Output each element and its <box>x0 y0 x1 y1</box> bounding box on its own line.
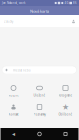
staticText: Kontakt <box>8 113 18 116</box>
button[interactable]: ★ <box>52 102 78 117</box>
button[interactable]: Account <box>70 16 77 25</box>
button[interactable]: Home <box>26 128 52 140</box>
staticText: Recent <box>8 94 18 97</box>
staticText: Fotografie <box>58 94 72 97</box>
staticText: 4G <box>64 1 68 5</box>
button[interactable]: Hledat nebo <box>2 66 76 74</box>
staticText: ★ <box>62 102 69 112</box>
button[interactable]: Uložené <box>26 83 52 98</box>
staticText: Oblíbené <box>58 113 72 116</box>
button[interactable]: Recents <box>52 128 78 140</box>
staticText: Jan Nakonal, work <box>2 1 25 5</box>
button[interactable]: Back <box>0 128 26 140</box>
staticText: ◀ <box>12 132 15 136</box>
staticText: Hledat nebo <box>13 69 31 72</box>
staticText: 86 <box>73 1 77 5</box>
staticText: Uložené <box>33 94 45 97</box>
button[interactable]: Recent <box>0 83 26 98</box>
button[interactable]: Poznámky <box>26 102 52 117</box>
staticText: Poznámky <box>33 113 45 116</box>
staticText: Nová karta <box>30 9 49 14</box>
staticText: Záložky <box>4 20 13 23</box>
button[interactable]: Fotografie <box>52 83 78 98</box>
button[interactable]: Kontakt <box>0 102 26 117</box>
